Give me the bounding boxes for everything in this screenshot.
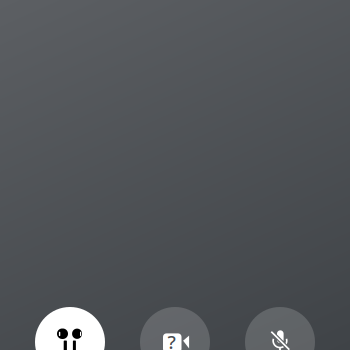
staticText: ? (167, 329, 175, 350)
button[interactable]: Mute (245, 307, 315, 350)
button[interactable]: Audio output (35, 307, 105, 350)
button[interactable]: Camera (140, 307, 210, 350)
